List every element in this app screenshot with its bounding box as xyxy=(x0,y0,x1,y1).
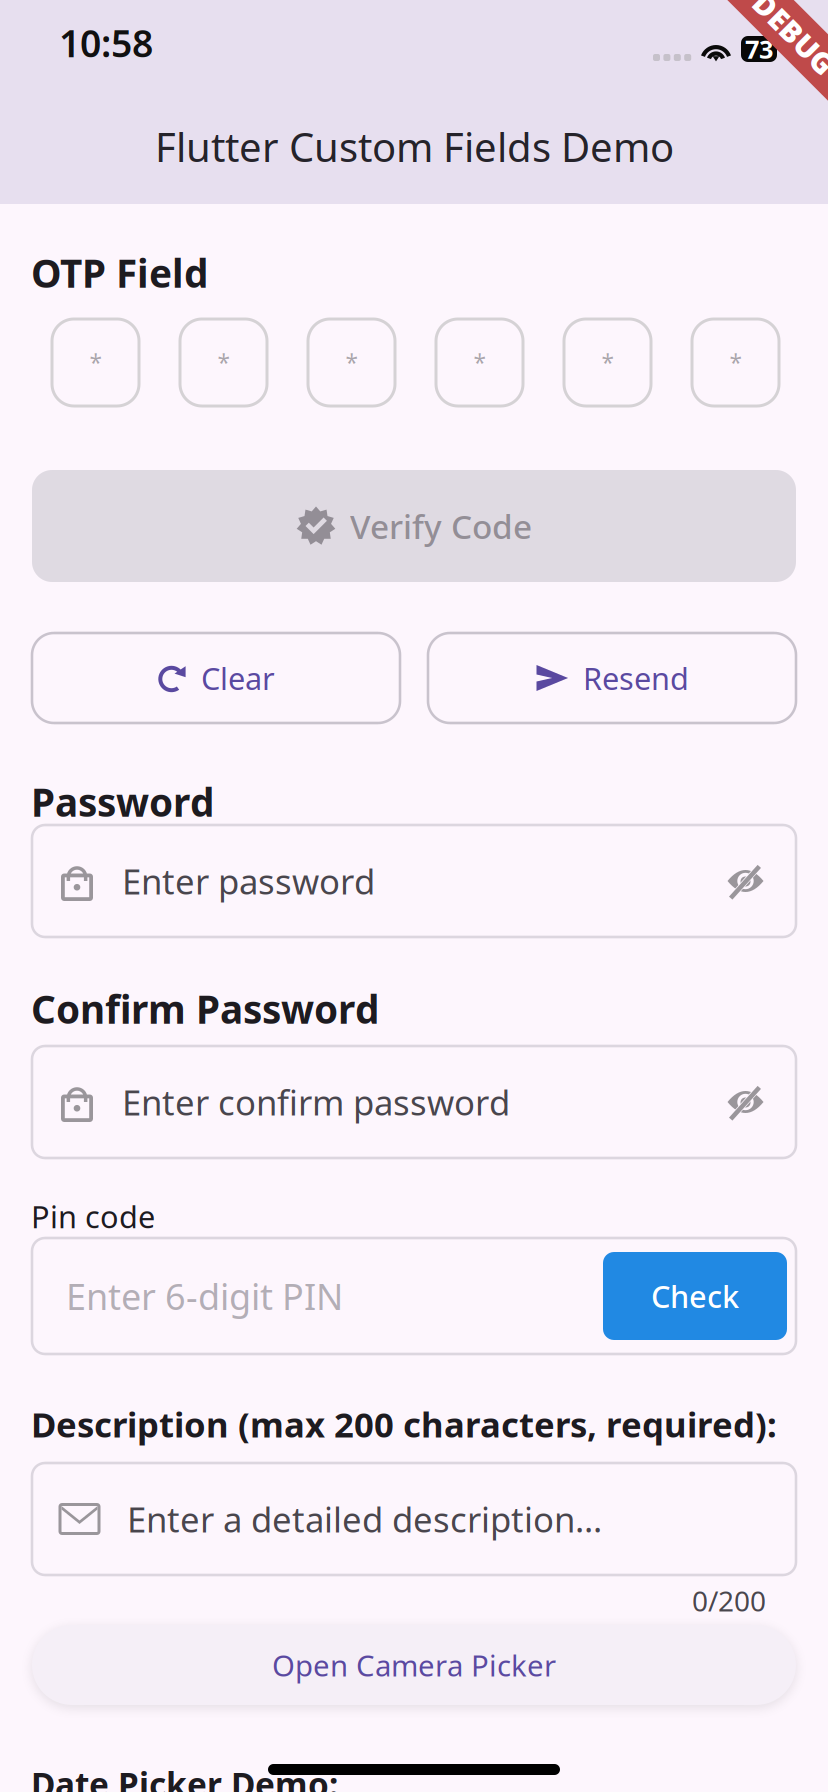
staticText: Description (max 200 characters, require… xyxy=(31,1401,777,1447)
staticText: DEBUG xyxy=(743,14,828,53)
staticText: 0/200 xyxy=(692,1582,766,1619)
button[interactable]: Open Camera Picker xyxy=(32,1625,796,1705)
staticText: * xyxy=(217,347,229,377)
staticText: OTP Field xyxy=(31,247,208,298)
staticText: Enter 6-digit PIN xyxy=(66,1272,343,1320)
button[interactable]: Resend xyxy=(428,633,796,723)
staticText: Date Picker Demo: xyxy=(31,1762,338,1792)
staticText: Clear xyxy=(201,658,275,698)
staticText: Confirm Password xyxy=(31,983,379,1034)
staticText: Pin code xyxy=(31,1196,155,1237)
staticText: Verify Code xyxy=(350,504,532,548)
staticText: * xyxy=(601,347,613,377)
staticText: 10:58 xyxy=(59,18,153,68)
staticText: 73 xyxy=(745,32,773,66)
button[interactable]: Check xyxy=(603,1252,787,1340)
button[interactable]: Verify Code xyxy=(32,470,796,582)
staticText: Enter a detailed description... xyxy=(127,1496,602,1542)
button[interactable]: Clear xyxy=(32,633,400,723)
staticText: Resend xyxy=(583,658,689,698)
staticText: * xyxy=(89,347,101,377)
staticText: Enter password xyxy=(122,858,375,904)
staticText: Open Camera Picker xyxy=(272,1645,556,1684)
staticText: * xyxy=(473,347,485,377)
staticText: * xyxy=(345,347,357,377)
staticText: Flutter Custom Fields Demo xyxy=(155,120,674,173)
staticText: Check xyxy=(651,1276,739,1316)
staticText: Password xyxy=(31,776,214,827)
staticText: * xyxy=(729,347,741,377)
staticText: Enter confirm password xyxy=(122,1079,510,1125)
